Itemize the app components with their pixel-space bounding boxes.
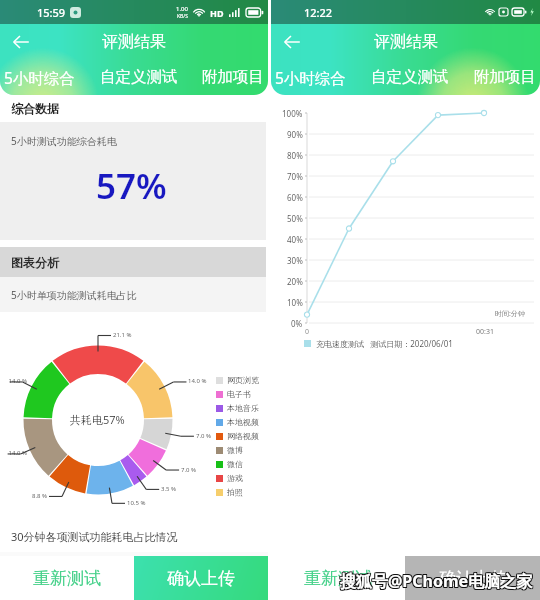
staticText: 3.5 % xyxy=(161,485,187,493)
staticText: 14.0 % xyxy=(1,449,27,457)
staticText: 评测结果 xyxy=(102,32,166,52)
staticText: 60% xyxy=(287,192,303,203)
staticText: 50% xyxy=(287,213,303,224)
staticText: 搜狐号@PChome电脑之家 xyxy=(340,570,533,592)
staticText: 7.0 % xyxy=(181,466,207,474)
staticText: 搜狐号@PChome电脑之家 xyxy=(339,571,532,593)
staticText: 搜狐号@PChome电脑之家 xyxy=(340,571,533,593)
staticText: 30% xyxy=(287,255,303,266)
staticText: 微博 xyxy=(227,445,243,455)
staticText: 90% xyxy=(287,129,303,140)
staticText: 自定义测试 xyxy=(371,67,449,87)
staticText: 搜狐号@PChome电脑之家 xyxy=(339,570,532,592)
staticText: 5小时测试功能综合耗电 xyxy=(11,134,117,148)
staticText: 游戏 xyxy=(227,473,243,483)
staticText: 本地视频 xyxy=(227,417,259,427)
staticText: 重新测试 xyxy=(304,568,372,589)
staticText: 20% xyxy=(287,276,303,287)
staticText: 100% xyxy=(282,108,303,119)
button[interactable]: 自定义测试 xyxy=(371,67,449,87)
staticText: 1.00 xyxy=(176,5,188,13)
staticText: 微信 xyxy=(227,459,243,469)
staticText: 0% xyxy=(291,318,303,329)
staticText: 本地音乐 xyxy=(227,403,259,413)
button[interactable]: 重新测试 xyxy=(271,556,405,600)
staticText: 70% xyxy=(287,171,303,182)
staticText: 12:22 xyxy=(304,5,333,20)
staticText: 自定义测试 xyxy=(100,67,178,87)
staticText: 搜狐号@PChome电脑之家 xyxy=(340,569,533,591)
staticText: 5小时综合 xyxy=(4,67,75,88)
staticText: 附加项目 xyxy=(202,67,264,87)
staticText: 21.1 % xyxy=(113,331,139,339)
button[interactable]: 附加项目 xyxy=(202,67,264,87)
staticText: 10% xyxy=(287,297,303,308)
staticText: 搜狐号@PChome电脑之家 xyxy=(341,569,534,591)
button[interactable]: Back xyxy=(8,29,34,55)
staticText: 拍照 xyxy=(227,487,243,497)
staticText: 重新测试 xyxy=(33,568,101,589)
staticText: KB/S xyxy=(177,13,188,20)
button[interactable]: 确认上传 xyxy=(134,556,268,600)
staticText: 搜狐号@PChome电脑之家 xyxy=(339,569,532,591)
staticText: 确认上传 xyxy=(167,568,235,589)
staticText: 图表分析 xyxy=(11,255,59,270)
staticText: 确认上传 xyxy=(439,568,507,589)
button[interactable]: 确认上传 xyxy=(405,556,540,600)
staticText: 网页浏览 xyxy=(227,375,259,385)
staticText: 评测结果 xyxy=(374,32,438,52)
staticText: 14.0 % xyxy=(188,377,214,385)
staticText: 30分钟各项测试功能耗电占比情况 xyxy=(11,529,178,544)
staticText: 7.0 % xyxy=(196,432,222,440)
staticText: 00:31 xyxy=(476,327,494,337)
button[interactable]: 自定义测试 xyxy=(100,67,178,87)
staticText: 10.5 % xyxy=(127,499,153,507)
staticText: 5小时单项功能测试耗电占比 xyxy=(11,288,137,302)
staticText: 57% xyxy=(96,162,167,210)
staticText: 5小时综合 xyxy=(275,67,346,88)
staticText: 80% xyxy=(287,150,303,161)
staticText: 综合数据 xyxy=(11,101,59,116)
button[interactable]: 5小时综合 xyxy=(275,67,346,88)
staticText: 40% xyxy=(287,234,303,245)
staticText: HD xyxy=(210,7,224,19)
button[interactable]: 附加项目 xyxy=(474,67,536,87)
staticText: 共耗电57% xyxy=(70,412,125,427)
staticText: 搜狐号@PChome电脑之家 xyxy=(341,571,534,593)
staticText: 网络视频 xyxy=(227,431,259,441)
staticText: 搜狐号@PChome电脑之家 xyxy=(341,570,534,592)
staticText: 8.8 % xyxy=(21,492,47,500)
button[interactable]: Back xyxy=(279,29,305,55)
staticText: 时间:分钟 xyxy=(495,309,525,319)
staticText: 0 xyxy=(305,327,310,337)
staticText: 充电速度测试 测试日期：2020/06/01 xyxy=(316,338,453,349)
staticText: 附加项目 xyxy=(474,67,536,87)
button[interactable]: 重新测试 xyxy=(0,556,134,600)
staticText: 电子书 xyxy=(227,389,251,399)
staticText: 14.0 % xyxy=(1,377,27,385)
button[interactable]: 5小时综合 xyxy=(4,67,75,88)
staticText: 15:59 xyxy=(37,5,66,20)
